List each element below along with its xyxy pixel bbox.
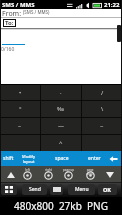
button[interactable]: — [41,118,81,134]
button[interactable]: page up [61,167,75,181]
button[interactable] [0,135,40,151]
staticText: — [58,122,65,130]
button[interactable]: left [20,167,34,181]
button[interactable]: Backspace [105,151,122,166]
staticText: Modify layout [22,154,35,164]
button[interactable]: ‰ [41,101,81,117]
button[interactable]: enter [83,151,105,166]
staticText: ~ [100,122,104,130]
button[interactable]: right [41,167,55,181]
staticText: space [55,155,69,162]
staticText: ‰ [57,105,65,113]
button[interactable]: – [0,118,40,134]
button[interactable]: shift [0,151,17,166]
staticText: / [101,89,104,97]
button[interactable]: ~ [82,118,122,134]
button[interactable]: Send [22,184,47,195]
staticText: 21:22 [104,1,120,9]
staticText: – [18,122,22,130]
staticText: page up [63,168,74,172]
staticText: page down [83,168,97,176]
staticText: Menu [75,186,89,193]
staticText: 480x800 27kb PNG [14,199,108,213]
staticText: shift [3,155,14,162]
staticText: From: [2,9,22,17]
button[interactable]: \ [82,101,122,117]
staticText: OK [103,186,112,193]
button[interactable]: ° [0,101,40,117]
button[interactable]: To: [5,19,14,27]
button[interactable]: • [0,85,40,100]
staticText: · [60,89,62,97]
staticText: ° [19,105,22,113]
staticText: To: [5,19,14,27]
staticText: 0/160 [1,46,15,53]
button[interactable]: page down [83,167,97,181]
button[interactable]: · [41,85,81,100]
button[interactable]: Down [103,168,116,181]
staticText: Send [29,186,41,193]
button[interactable]: ^ [41,135,81,151]
staticText: left [25,168,30,172]
staticText: \ [101,105,104,113]
staticText: ^ [59,139,63,147]
button[interactable]: / [82,85,122,100]
button[interactable]: Modify layout [17,151,40,166]
staticText: (SMS / MMS) [23,9,50,15]
staticText: enter [88,155,101,162]
staticText: SMS / MMS [2,1,35,9]
button[interactable]: Keyboard [50,184,63,195]
button[interactable]: space [40,151,83,166]
staticText: • [19,89,22,97]
button[interactable]: OK [98,184,117,195]
button[interactable]: Menu [68,184,95,195]
staticText: right [45,168,52,172]
button[interactable]: Start [1,184,17,195]
button[interactable]: Up [4,168,17,181]
button[interactable] [82,135,122,151]
